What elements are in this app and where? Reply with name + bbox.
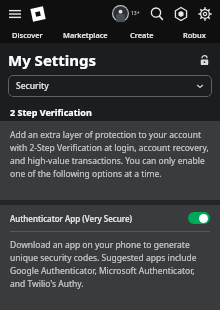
staticText: My Settings: [8, 50, 97, 70]
button[interactable]: Discover: [0, 30, 54, 40]
staticText: Download an app on your phone to generat…: [10, 239, 212, 290]
button[interactable]: Settings: [196, 5, 214, 23]
staticText: Robux: [183, 30, 206, 40]
button[interactable]: Privacy lock: [196, 52, 212, 68]
button[interactable]: Robux: [168, 30, 220, 40]
button[interactable]: Robux: [172, 5, 190, 23]
button[interactable]: Search: [148, 5, 166, 23]
button[interactable]: Marketplace: [54, 30, 116, 40]
staticText: Discover: [12, 30, 43, 40]
staticText: 13+: [131, 10, 140, 17]
staticText: Security: [16, 80, 49, 92]
button[interactable]: Create: [116, 30, 168, 40]
staticText: Marketplace: [63, 30, 108, 40]
button[interactable]: Authenticator App (Very Secure): [0, 205, 220, 231]
button[interactable]: Profile: [112, 5, 140, 22]
staticText: Create: [130, 30, 154, 40]
staticText: Authenticator App (Very Secure): [10, 213, 133, 224]
button[interactable]: Menu: [7, 6, 23, 22]
button[interactable]: Security: [8, 75, 212, 97]
button[interactable]: Authenticator App toggle, on: [188, 212, 210, 224]
staticText: Add an extra layer of protection to your…: [10, 129, 210, 180]
button[interactable]: Roblox home: [29, 5, 47, 23]
staticText: 2 Step Verification: [10, 106, 92, 118]
